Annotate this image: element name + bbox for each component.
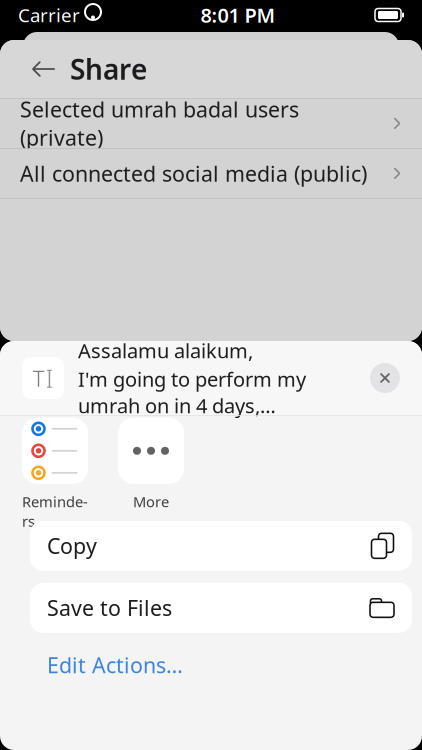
button[interactable]: Edit Actions… [30, 645, 200, 685]
button[interactable]: More [118, 418, 184, 511]
staticText: T [32, 363, 44, 393]
staticText: Save to Files [47, 594, 172, 622]
button[interactable]: All connected social media (public) [0, 149, 422, 198]
staticText: I'm going to perform my umrah on in 4 da… [78, 366, 306, 419]
staticText: Share [70, 50, 147, 88]
staticText: Reminders [22, 492, 88, 531]
staticText: Selected umrah badal users (private) [20, 95, 299, 152]
staticText: Assalamu alaikum, [78, 337, 253, 364]
staticText: All connected social media (public) [20, 159, 367, 187]
button[interactable]: Back [20, 40, 68, 98]
button[interactable]: Copy [30, 521, 412, 571]
button[interactable]: Close [370, 363, 400, 393]
button[interactable]: Reminders [22, 418, 88, 531]
staticText: Carrier [18, 3, 80, 27]
button[interactable]: Save to Files [30, 583, 412, 633]
staticText: Copy [47, 532, 97, 560]
staticText: More [133, 492, 169, 511]
button[interactable]: Selected umrah badal users (private) [0, 99, 422, 148]
staticText: I [45, 361, 53, 395]
staticText: Edit Actions… [47, 651, 183, 679]
staticText: 8:01 PM [200, 2, 275, 28]
